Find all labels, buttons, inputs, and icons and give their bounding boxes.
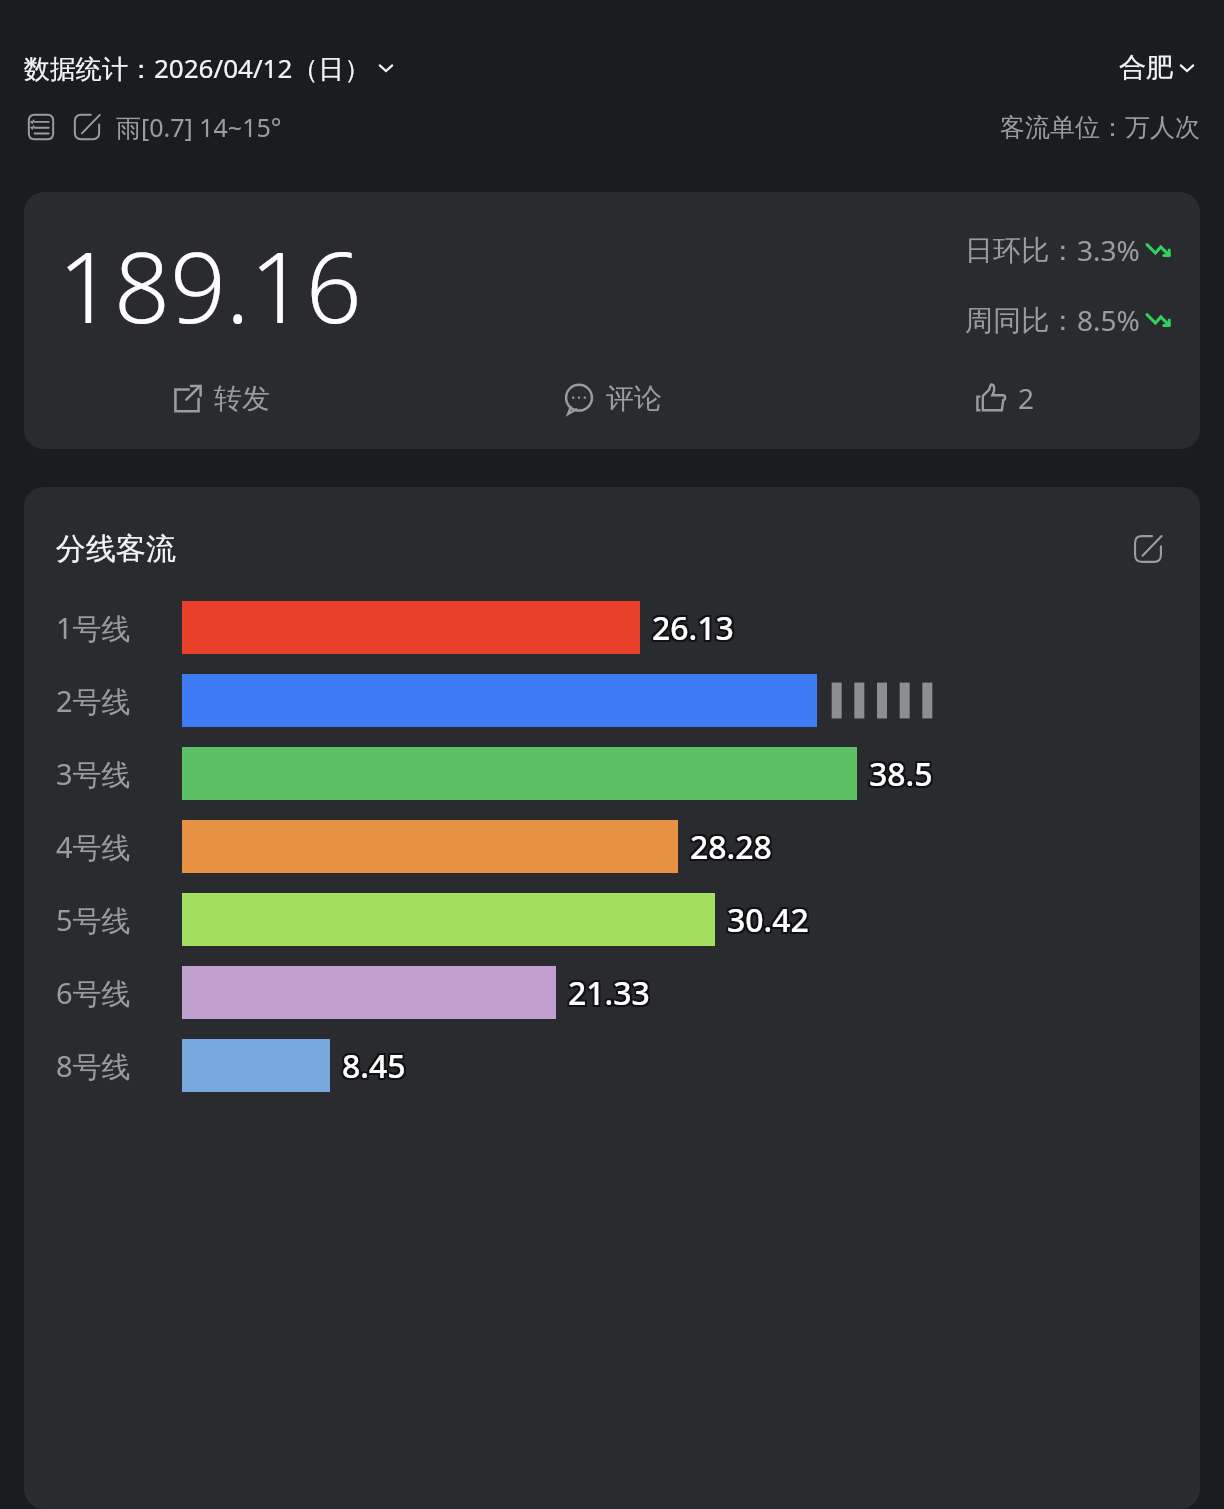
staticText: 26.13	[654, 604, 736, 648]
staticText: 30.42	[729, 896, 811, 940]
staticText: 21.33	[566, 969, 648, 1013]
staticText: 数据统计：2026/04/12（日）	[24, 50, 371, 86]
button[interactable]: 合肥	[1119, 49, 1200, 87]
staticText: 28.28	[690, 827, 772, 871]
staticText: 30.42	[729, 900, 811, 944]
staticText: 38.5	[869, 754, 933, 798]
staticText: 8.45	[344, 1042, 408, 1086]
staticText: 38.5	[867, 752, 931, 796]
staticText: 38.5	[871, 754, 935, 798]
button[interactable]: 列表	[24, 110, 58, 144]
staticText: 28.28	[692, 827, 774, 871]
staticText: 21.33	[570, 973, 652, 1017]
staticText: 28.28	[692, 823, 774, 867]
staticText: 6号线	[56, 973, 131, 1013]
staticText: 分线客流	[56, 530, 176, 568]
staticText: 4号线	[56, 827, 131, 867]
button[interactable]: 转发	[24, 375, 416, 422]
button[interactable]: 编辑分线客流	[1128, 529, 1168, 569]
staticText: 8.45	[342, 1042, 406, 1086]
staticText: 21.33	[566, 971, 648, 1015]
staticText: 26.13	[654, 608, 736, 652]
staticText: 28.28	[688, 825, 770, 869]
staticText: 38.5	[871, 750, 935, 794]
staticText: 38.5	[867, 754, 931, 798]
button[interactable]: 2	[808, 373, 1200, 423]
staticText: 189.16	[58, 218, 362, 351]
staticText: 21.33	[568, 969, 650, 1013]
staticText: 30.42	[725, 896, 807, 940]
staticText: 38.5	[869, 752, 933, 796]
staticText: 30.42	[729, 898, 811, 942]
staticText: 30.42	[725, 898, 807, 942]
staticText: 26.13	[650, 604, 732, 648]
staticText: 3号线	[56, 754, 131, 794]
staticText: 周同比：	[965, 303, 1077, 338]
staticText: 8.45	[340, 1044, 404, 1088]
staticText: 28.28	[688, 827, 770, 871]
staticText: 28.28	[690, 823, 772, 867]
staticText: 30.42	[727, 900, 809, 944]
staticText: 21.33	[568, 973, 650, 1017]
staticText: 38.5	[869, 750, 933, 794]
staticText: 3.3%	[1077, 231, 1140, 269]
staticText: 客流单位：万人次	[1000, 112, 1200, 143]
staticText: 8.5%	[1077, 301, 1140, 339]
staticText: 评论	[606, 381, 662, 416]
button[interactable]: 编辑	[70, 110, 104, 144]
staticText: 26.13	[652, 606, 734, 650]
staticText: 28.28	[688, 823, 770, 867]
staticText: 转发	[214, 381, 270, 416]
staticText: 日环比：	[965, 233, 1077, 268]
staticText: 21.33	[566, 973, 648, 1017]
button[interactable]: 数据统计：2026/04/12（日）	[24, 48, 399, 88]
staticText: 30.42	[727, 898, 809, 942]
staticText: 28.28	[690, 825, 772, 869]
staticText: 28.28	[692, 825, 774, 869]
staticText: 1号线	[56, 608, 131, 648]
button[interactable]: 评论	[416, 375, 808, 422]
staticText: 8.45	[344, 1046, 408, 1090]
staticText: 38.5	[867, 750, 931, 794]
staticText: 2	[1018, 379, 1035, 417]
staticText: 38.5	[871, 752, 935, 796]
staticText: 26.13	[654, 606, 736, 650]
staticText: 26.13	[652, 604, 734, 648]
staticText: 2号线	[56, 681, 131, 721]
staticText: 30.42	[727, 896, 809, 940]
staticText: 8.45	[340, 1046, 404, 1090]
staticText: 21.33	[570, 969, 652, 1013]
staticText: 8.45	[340, 1042, 404, 1086]
staticText: 26.13	[652, 608, 734, 652]
staticText: 8.45	[342, 1044, 406, 1088]
staticText: 8.45	[344, 1044, 408, 1088]
staticText: 5号线	[56, 900, 131, 940]
staticText: 26.13	[650, 608, 732, 652]
staticText: 8.45	[342, 1046, 406, 1090]
staticText: 26.13	[650, 606, 732, 650]
staticText: 8号线	[56, 1046, 131, 1086]
staticText: 21.33	[568, 971, 650, 1015]
staticText: 30.42	[725, 900, 807, 944]
button[interactable]: 189.16	[24, 192, 1200, 449]
staticText: 雨[0.7] 14~15°	[116, 110, 282, 144]
staticText: 合肥	[1119, 51, 1173, 85]
staticText: 21.33	[570, 971, 652, 1015]
